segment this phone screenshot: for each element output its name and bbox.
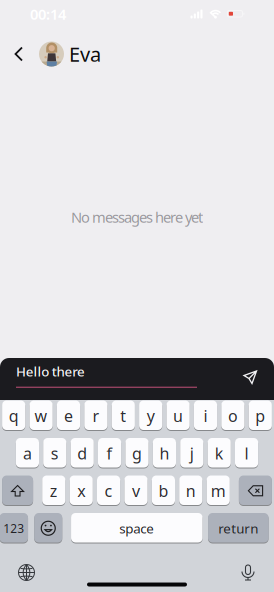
button[interactable]: s (43, 438, 66, 468)
staticText: a (23, 443, 32, 464)
button[interactable]: d (71, 438, 94, 468)
button[interactable]: x (70, 475, 93, 506)
staticText: p (255, 405, 265, 426)
staticText: o (228, 405, 238, 426)
button[interactable]: n (179, 475, 202, 506)
staticText: return (218, 519, 258, 537)
staticText: n (186, 480, 196, 501)
button[interactable]: Delete (239, 475, 272, 506)
staticText: Hello there (16, 362, 85, 380)
button[interactable]: m (207, 475, 230, 506)
button[interactable]: t (112, 400, 135, 431)
button[interactable]: p (249, 400, 272, 431)
button[interactable]: q (2, 400, 25, 431)
staticText: t (120, 405, 126, 426)
staticText: No messages here yet (71, 207, 203, 227)
staticText: space (119, 519, 154, 537)
staticText: h (159, 443, 169, 464)
staticText: d (77, 443, 87, 464)
button[interactable]: f (98, 438, 121, 468)
button[interactable]: b (152, 475, 175, 506)
staticText: e (64, 405, 73, 426)
button[interactable]: j (180, 438, 203, 468)
staticText: k (215, 443, 224, 464)
staticText: r (92, 405, 99, 426)
staticText: l (245, 443, 249, 464)
staticText: b (158, 480, 168, 501)
button[interactable]: Back (0, 46, 39, 61)
button[interactable]: Eva (39, 41, 101, 67)
button[interactable]: v (124, 475, 148, 506)
staticText: q (9, 405, 19, 426)
staticText: w (35, 405, 48, 426)
button[interactable]: i (194, 400, 217, 431)
button[interactable]: h (153, 438, 176, 468)
staticText: Eva (69, 41, 101, 67)
staticText: 00:14 (30, 4, 66, 24)
staticText: g (132, 443, 142, 464)
button[interactable]: Next keyboard (0, 564, 35, 581)
staticText: u (173, 405, 183, 426)
button[interactable]: Emoji (34, 513, 62, 543)
button[interactable]: k (208, 438, 231, 468)
staticText: x (77, 480, 85, 501)
button[interactable]: Send (243, 370, 274, 388)
button[interactable]: e (57, 400, 80, 431)
button[interactable]: Dictate (241, 564, 274, 581)
staticText: f (107, 443, 113, 464)
button[interactable]: r (84, 400, 107, 431)
button[interactable]: c (97, 475, 120, 506)
button[interactable]: y (139, 400, 162, 431)
staticText: v (132, 480, 140, 501)
staticText: m (211, 480, 226, 501)
button[interactable]: o (221, 400, 244, 431)
button[interactable]: l (235, 438, 258, 468)
staticText: 123 (3, 520, 24, 536)
button[interactable]: u (166, 400, 190, 431)
button[interactable]: g (125, 438, 149, 468)
staticText: s (51, 443, 59, 464)
staticText: y (147, 405, 155, 426)
button[interactable]: Numbers (0, 513, 28, 543)
button[interactable]: return (208, 513, 268, 543)
button[interactable]: z (42, 475, 65, 506)
staticText: j (190, 443, 194, 464)
staticText: z (50, 480, 58, 501)
staticText: c (105, 480, 113, 501)
button[interactable]: Shift (2, 475, 33, 506)
staticText: i (203, 405, 207, 426)
button[interactable]: a (16, 438, 39, 468)
button[interactable]: w (29, 400, 53, 431)
button[interactable]: space (71, 513, 202, 543)
